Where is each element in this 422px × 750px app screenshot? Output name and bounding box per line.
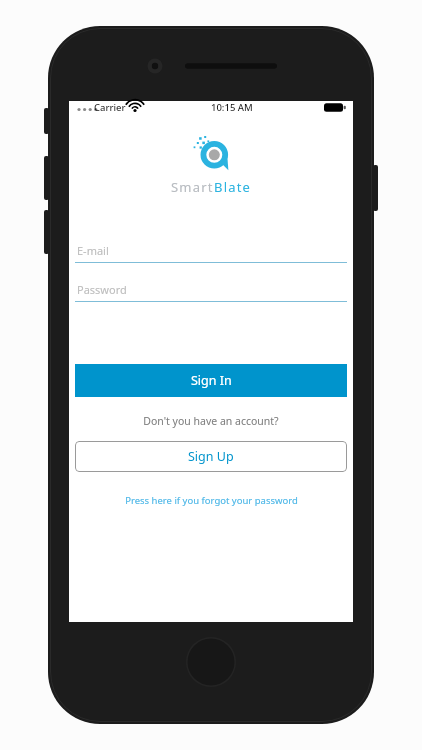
button[interactable]: Password (75, 277, 347, 302)
staticText: Sign Up (188, 448, 234, 465)
staticText: Sign In (191, 372, 232, 389)
staticText: E-mail (77, 243, 109, 258)
staticText: 10:15 AM (211, 101, 253, 114)
staticText: Smart (171, 178, 214, 196)
staticText: Press here if you forgot your password (125, 494, 298, 507)
button[interactable]: Press here if you forgot your password (69, 494, 353, 507)
button[interactable]: E-mail (75, 238, 347, 263)
staticText: Blate (214, 178, 252, 196)
button[interactable]: Sign Up (75, 441, 347, 472)
staticText: Password (77, 282, 127, 297)
staticText: Carrier (94, 101, 126, 114)
staticText: Don't you have an account? (69, 414, 353, 428)
button[interactable]: Sign In (75, 364, 347, 397)
